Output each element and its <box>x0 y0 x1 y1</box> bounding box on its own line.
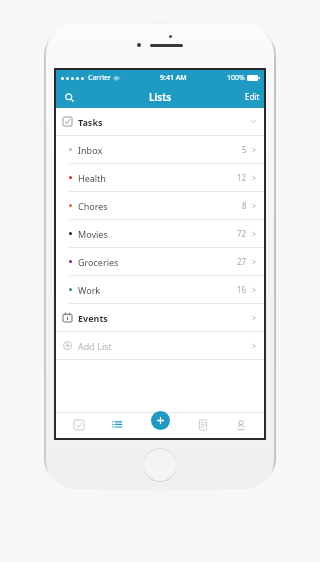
button[interactable]: Movies <box>56 220 264 247</box>
staticText: Edit <box>245 91 260 102</box>
staticText: 16 <box>237 284 247 295</box>
staticText: 8 <box>242 200 247 211</box>
button[interactable]: Edit <box>245 91 260 102</box>
button[interactable]: Inbox <box>56 136 264 163</box>
button[interactable]: Search <box>59 87 79 107</box>
button[interactable]: Profile tab <box>226 412 256 438</box>
staticText: Chores <box>78 200 108 212</box>
button[interactable]: Groceries <box>56 248 264 275</box>
staticText: 27 <box>237 256 247 267</box>
other: Home button <box>144 449 176 481</box>
button[interactable]: Tasks tab <box>64 412 94 438</box>
staticText: Health <box>78 172 106 184</box>
staticText: Groceries <box>78 256 119 268</box>
staticText: 5 <box>242 144 247 155</box>
staticText: Carrier <box>88 73 111 83</box>
button[interactable]: Notes tab <box>188 412 218 438</box>
staticText: Inbox <box>78 144 103 156</box>
button[interactable]: Add <box>151 411 170 430</box>
button[interactable]: Tasks <box>56 108 264 135</box>
staticText: Events <box>78 312 108 324</box>
staticText: Lists <box>149 90 172 104</box>
staticText: Tasks <box>78 116 103 128</box>
staticText: 72 <box>237 228 247 239</box>
staticText: 12 <box>237 172 247 183</box>
staticText: Add List <box>78 340 112 352</box>
button[interactable]: Work <box>56 276 264 303</box>
button[interactable]: Health <box>56 164 264 191</box>
button[interactable]: Add List <box>56 332 264 359</box>
button[interactable]: Chores <box>56 192 264 219</box>
button[interactable]: Lists tab <box>102 412 132 438</box>
staticText: Work <box>78 284 101 296</box>
staticText: 9:41 AM <box>160 73 187 83</box>
staticText: 100% <box>227 73 245 83</box>
button[interactable]: Events <box>56 304 264 331</box>
staticText: Movies <box>78 228 108 240</box>
